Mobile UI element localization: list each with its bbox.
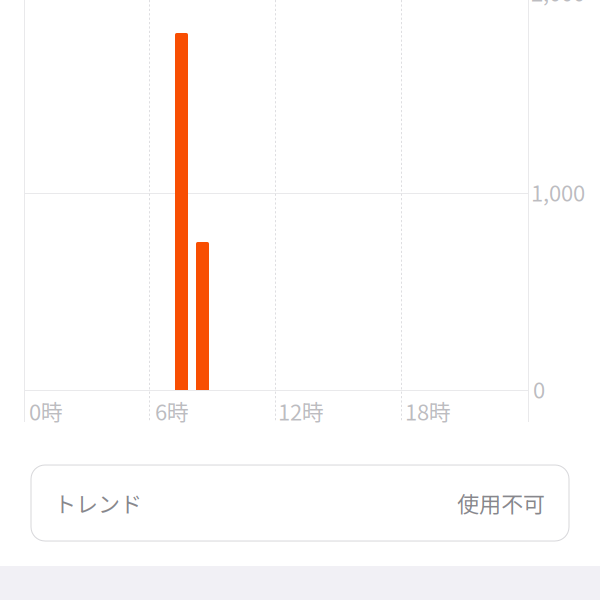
button[interactable]: トレンド: [31, 465, 569, 541]
staticText: 0時: [29, 395, 63, 427]
staticText: 使用不可: [457, 487, 545, 519]
staticText: 2,000: [531, 0, 585, 8]
staticText: 18時: [405, 395, 451, 427]
staticText: 1,000: [531, 176, 585, 208]
staticText: 6時: [155, 395, 189, 427]
staticText: トレンド: [54, 487, 142, 519]
staticText: 12時: [278, 395, 324, 427]
staticText: 0: [533, 373, 545, 405]
